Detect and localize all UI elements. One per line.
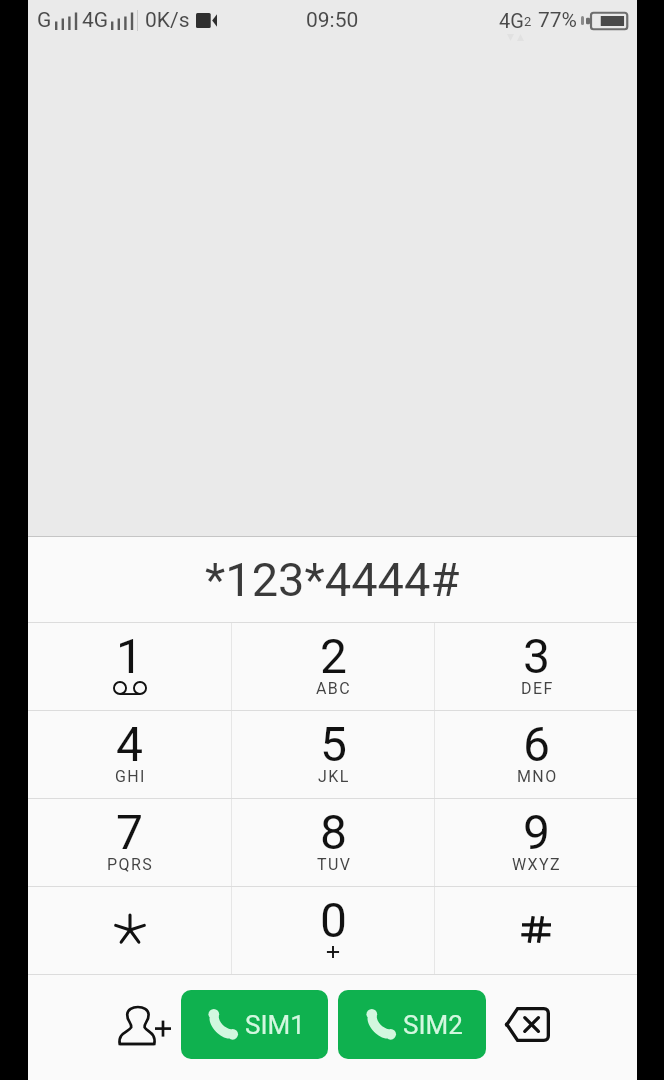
staticText: TUV [317, 855, 352, 874]
staticText: 2 [320, 628, 347, 684]
staticText: *123*4444# [205, 552, 460, 607]
button[interactable]: SIM2 [338, 990, 486, 1059]
staticText: 1 [116, 628, 143, 684]
staticText: 4G [82, 8, 109, 33]
staticText: GHI [115, 767, 146, 786]
staticText: PQRS [107, 855, 154, 874]
staticText: 09:50 [306, 8, 359, 33]
button[interactable]: 8 [232, 799, 434, 886]
button[interactable]: 0 [232, 887, 434, 974]
button[interactable]: SIM1 [181, 990, 328, 1059]
button[interactable]: 3 [435, 623, 637, 710]
button[interactable] [28, 887, 231, 974]
staticText: SIM1 [245, 1010, 305, 1040]
button[interactable]: Backspace [486, 971, 637, 1077]
staticText: 7 [116, 804, 143, 860]
staticText: 77% [538, 8, 577, 33]
button[interactable]: 9 [435, 799, 637, 886]
staticText: DEF [521, 679, 554, 698]
staticText: 0 [320, 892, 347, 948]
staticText: ABC [316, 679, 352, 698]
staticText: G [37, 8, 52, 33]
staticText: 4 [116, 716, 143, 772]
staticText: 4G [499, 9, 524, 32]
staticText: WXYZ [512, 855, 562, 874]
button[interactable] [435, 887, 637, 974]
staticText: JKL [318, 767, 350, 786]
staticText: 3 [523, 628, 550, 684]
staticText: MNO [517, 767, 558, 786]
button[interactable]: 1 [28, 623, 231, 710]
button[interactable]: 4 [28, 711, 231, 798]
staticText: 5 [320, 716, 347, 772]
button[interactable]: 6 [435, 711, 637, 798]
button[interactable]: 7 [28, 799, 231, 886]
staticText: 2 [524, 14, 532, 29]
button[interactable]: Add contact [28, 971, 181, 1077]
button[interactable]: 2 [232, 623, 434, 710]
staticText: 9 [523, 804, 550, 860]
staticText: 6 [523, 716, 550, 772]
staticText: SIM2 [403, 1010, 463, 1040]
staticText: 0K/s [145, 8, 190, 33]
staticText: 8 [320, 804, 347, 860]
button[interactable]: 5 [232, 711, 434, 798]
